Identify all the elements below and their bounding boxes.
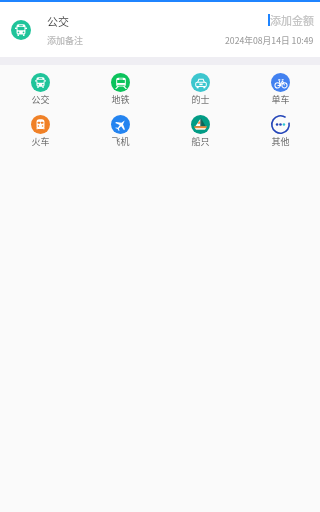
staticText: 公交 [31, 93, 50, 106]
button[interactable]: 添加金额 [225, 12, 314, 47]
staticText: 单车 [271, 93, 290, 106]
staticText: 地铁 [111, 93, 130, 106]
button[interactable]: 地铁 [80, 73, 160, 106]
button[interactable]: 飞机 [80, 115, 160, 148]
staticText: 添加备注 [47, 34, 84, 47]
button[interactable]: 船只 [160, 115, 240, 148]
button[interactable]: 公交 [0, 73, 80, 106]
button[interactable]: 火车 [0, 115, 80, 148]
staticText: 船只 [191, 135, 210, 148]
staticText: 公交 [47, 13, 69, 29]
staticText: 飞机 [111, 135, 130, 148]
staticText: 2024年08月14日 10:49 [225, 34, 314, 47]
staticText: 其他 [271, 135, 290, 148]
button[interactable]: 单车 [240, 73, 320, 106]
staticText: 的士 [191, 93, 210, 106]
button[interactable]: 公交 [0, 2, 320, 57]
staticText: 添加金额 [270, 12, 314, 28]
button[interactable]: 其他 [240, 115, 320, 148]
button[interactable]: 的士 [160, 73, 240, 106]
staticText: 火车 [31, 135, 50, 148]
